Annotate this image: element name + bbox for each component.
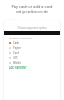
staticText: Pay cash or add a card [0, 4, 64, 9]
staticText: UPI [13, 56, 18, 60]
staticText: Card [13, 51, 19, 55]
staticText: Paytm [13, 46, 21, 50]
staticText: PAYMENT METHODS [9, 36, 32, 39]
staticText: and go cashless on ride [0, 10, 64, 14]
button[interactable]: Card [4, 50, 60, 55]
staticText: Choose payment option [4, 26, 60, 30]
staticText: Wallet [13, 61, 21, 65]
button[interactable]: ADD PAYMENT [9, 66, 27, 70]
button[interactable]: Wallet [4, 60, 60, 65]
button[interactable]: Paytm [4, 45, 60, 50]
button[interactable]: UPI [4, 55, 60, 60]
button[interactable]: Cash [4, 40, 60, 45]
staticText: Cash [13, 41, 20, 45]
